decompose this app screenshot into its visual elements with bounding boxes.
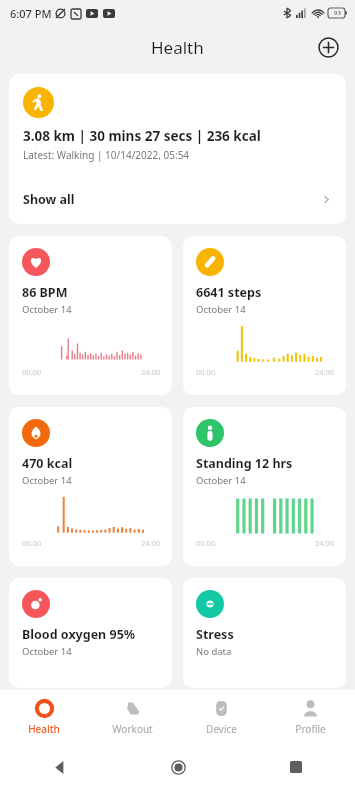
button[interactable]: Add bbox=[311, 30, 345, 64]
staticText: 24:00 bbox=[315, 538, 335, 548]
staticText: October 14 bbox=[22, 474, 72, 487]
staticText: Stress bbox=[196, 626, 234, 643]
button[interactable]: 470 kcal bbox=[9, 407, 172, 566]
button[interactable]: Device bbox=[177, 690, 266, 744]
staticText: Profile bbox=[295, 722, 326, 736]
staticText: 00:00 bbox=[22, 538, 42, 548]
staticText: October 14 bbox=[196, 474, 246, 487]
button[interactable]: Home bbox=[161, 750, 195, 784]
button[interactable]: Standing 12 hrs bbox=[183, 407, 346, 566]
button[interactable]: Workout bbox=[88, 690, 177, 744]
staticText: No data bbox=[196, 645, 232, 658]
button[interactable]: 6641 steps bbox=[183, 236, 346, 395]
button[interactable]: 86 BPM bbox=[9, 236, 172, 395]
staticText: Latest: Walking | 10/14/2022, 05:54 bbox=[23, 148, 190, 162]
button[interactable]: Profile bbox=[266, 690, 355, 744]
staticText: Workout bbox=[112, 722, 153, 736]
staticText: 00:00 bbox=[196, 367, 216, 377]
button[interactable]: Stress bbox=[183, 578, 346, 688]
staticText: 24:00 bbox=[315, 367, 335, 377]
staticText: 00:00 bbox=[196, 538, 216, 548]
staticText: 00:00 bbox=[22, 367, 42, 377]
staticText: 24:00 bbox=[141, 538, 161, 548]
button[interactable]: Show all bbox=[9, 180, 346, 218]
staticText: 470 kcal bbox=[22, 455, 73, 472]
staticText: 86 BPM bbox=[22, 284, 68, 301]
staticText: Standing 12 hrs bbox=[196, 455, 293, 472]
staticText: October 14 bbox=[22, 645, 72, 658]
button[interactable]: Blood oxygen 95% bbox=[9, 578, 172, 688]
staticText: 93 bbox=[334, 9, 341, 17]
button[interactable]: Health bbox=[0, 690, 88, 744]
staticText: Blood oxygen 95% bbox=[22, 626, 136, 643]
button[interactable]: Back bbox=[43, 750, 77, 784]
staticText: October 14 bbox=[196, 303, 246, 316]
staticText: 6:07 PM bbox=[10, 6, 52, 21]
staticText: 6641 steps bbox=[196, 284, 262, 301]
staticText: 3.08 km | 30 mins 27 secs | 236 kcal bbox=[23, 127, 261, 145]
staticText: Health bbox=[28, 722, 60, 736]
staticText: Health bbox=[151, 36, 204, 59]
staticText: 24:00 bbox=[141, 367, 161, 377]
staticText: October 14 bbox=[22, 303, 72, 316]
button[interactable]: 3.08 km | 30 mins 27 secs | 236 kcal bbox=[9, 74, 346, 224]
button[interactable]: Recents bbox=[279, 750, 313, 784]
staticText: Device bbox=[206, 722, 237, 736]
staticText: Show all bbox=[23, 191, 75, 208]
